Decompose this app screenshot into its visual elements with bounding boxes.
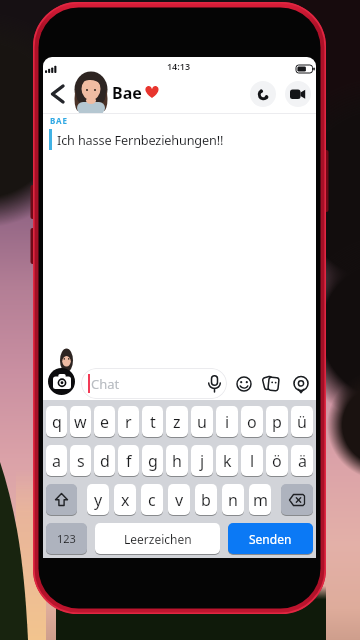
button[interactable] (260, 372, 283, 395)
staticText: b (201, 489, 211, 511)
staticText: 123 (57, 531, 76, 546)
button[interactable]: v (168, 484, 190, 516)
staticText: Bae (112, 82, 142, 104)
staticText: a (52, 450, 61, 472)
staticText: p (272, 411, 282, 433)
button[interactable]: i (216, 406, 238, 438)
staticText: w (74, 411, 87, 433)
staticText: c (148, 489, 156, 511)
staticText: Senden (249, 531, 292, 547)
button[interactable]: u (191, 406, 213, 438)
staticText: Chat (91, 375, 120, 393)
button[interactable] (281, 484, 313, 516)
button[interactable]: ü (291, 406, 313, 438)
button[interactable]: x (114, 484, 136, 516)
button[interactable]: q (46, 406, 67, 438)
staticText: o (247, 411, 257, 433)
button[interactable]: g (142, 445, 163, 477)
staticText: k (223, 450, 232, 472)
staticText: n (228, 489, 238, 511)
button[interactable] (46, 484, 77, 516)
staticText: d (100, 450, 110, 472)
staticText: h (172, 450, 182, 472)
button[interactable]: e (94, 406, 115, 438)
button[interactable]: a (46, 445, 67, 477)
button[interactable]: b (195, 484, 217, 516)
button[interactable]: ö (266, 445, 288, 477)
button[interactable]: r (118, 406, 139, 438)
staticText: 14:13 (43, 60, 314, 72)
button[interactable] (285, 81, 311, 107)
staticText: q (52, 411, 62, 433)
staticText: z (173, 411, 181, 433)
button[interactable]: d (94, 445, 115, 477)
staticText: g (148, 450, 158, 472)
staticText: s (77, 450, 85, 472)
button[interactable]: c (141, 484, 163, 516)
button[interactable]: Senden (228, 523, 313, 555)
staticText: t (150, 411, 156, 433)
button[interactable] (250, 81, 276, 107)
staticText: Leerzeichen (124, 531, 192, 547)
button[interactable] (289, 372, 312, 395)
button[interactable]: 123 (46, 523, 87, 555)
button[interactable] (48, 368, 75, 395)
button[interactable]: y (87, 484, 109, 516)
button[interactable] (45, 81, 69, 107)
button[interactable]: m (249, 484, 271, 516)
button[interactable]: s (70, 445, 91, 477)
button[interactable] (203, 372, 226, 395)
staticText: u (197, 411, 207, 433)
staticText: BAE (50, 115, 68, 126)
staticText: ö (272, 450, 282, 472)
staticText: i (225, 411, 230, 433)
staticText: ü (297, 411, 307, 433)
button[interactable]: Leerzeichen (95, 523, 220, 555)
button[interactable]: j (191, 445, 213, 477)
staticText: f (126, 450, 132, 472)
staticText: v (175, 489, 184, 511)
button[interactable]: p (266, 406, 288, 438)
staticText: ä (298, 450, 307, 472)
staticText: Ich hasse Fernbeziehungen!! (57, 131, 224, 148)
button[interactable]: l (241, 445, 263, 477)
button[interactable]: k (216, 445, 238, 477)
button[interactable]: ä (291, 445, 313, 477)
button[interactable]: o (241, 406, 263, 438)
button[interactable]: n (222, 484, 244, 516)
button[interactable]: h (166, 445, 188, 477)
staticText: l (250, 450, 255, 472)
button[interactable]: Chat (81, 368, 227, 399)
staticText: x (121, 489, 130, 511)
staticText: e (100, 411, 110, 433)
staticText: r (125, 411, 132, 433)
staticText: m (253, 489, 268, 511)
button[interactable]: t (142, 406, 163, 438)
staticText: y (94, 489, 103, 511)
button[interactable]: z (166, 406, 188, 438)
button[interactable]: w (70, 406, 91, 438)
button[interactable]: f (118, 445, 139, 477)
staticText: j (200, 450, 205, 472)
button[interactable] (232, 372, 255, 395)
